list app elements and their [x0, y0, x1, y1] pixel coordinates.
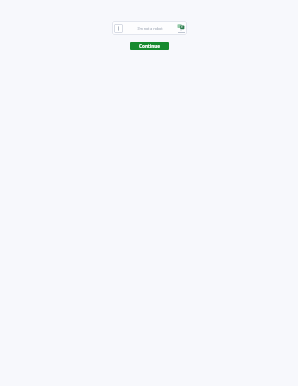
staticText: I'm not a robot [137, 26, 163, 31]
button[interactable]: Continue [130, 42, 169, 50]
button[interactable] [114, 24, 123, 33]
staticText: Continue [139, 43, 160, 49]
button[interactable]: Refresh verification [177, 24, 185, 33]
